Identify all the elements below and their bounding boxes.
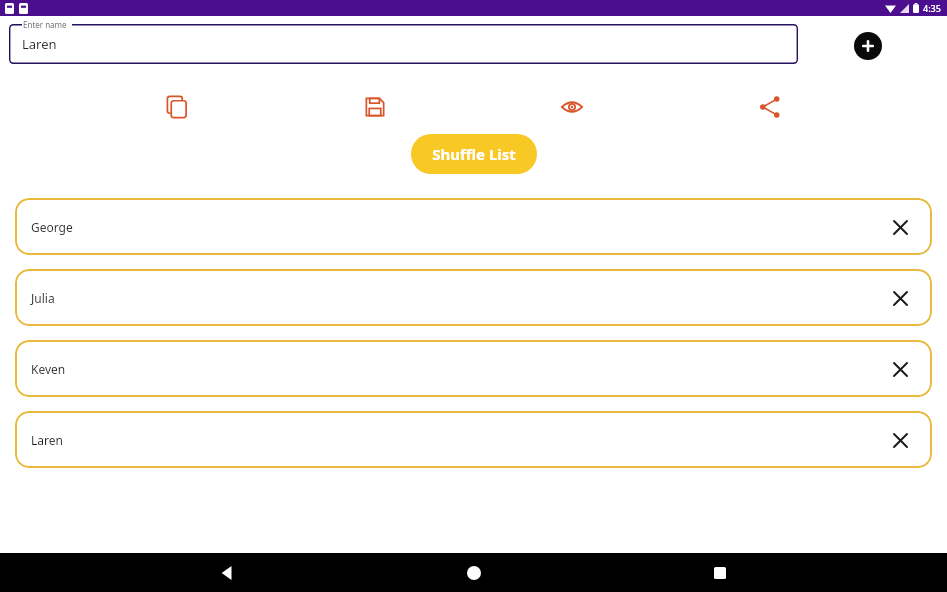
button[interactable]: Show list — [551, 86, 593, 128]
button[interactable]: Shuffle List — [411, 134, 537, 174]
staticText: George — [31, 219, 73, 235]
button[interactable]: Laren — [9, 24, 798, 64]
button[interactable]: Home — [454, 553, 494, 592]
button[interactable]: Back — [207, 553, 247, 592]
button[interactable]: George — [15, 198, 932, 255]
staticText: 4:35 — [923, 2, 941, 14]
staticText: Shuffle List — [432, 144, 516, 164]
staticText: Julia — [31, 290, 55, 306]
button[interactable]: Julia — [15, 269, 932, 326]
button[interactable]: Remove Julia — [886, 284, 914, 312]
button[interactable]: Copy list — [156, 86, 198, 128]
button[interactable]: Save list — [354, 86, 396, 128]
staticText: Laren — [31, 432, 63, 448]
button[interactable]: Remove Keven — [886, 355, 914, 383]
staticText: Keven — [31, 361, 66, 377]
button[interactable]: Laren — [15, 411, 932, 468]
button[interactable]: Keven — [15, 340, 932, 397]
button[interactable]: Remove George — [886, 213, 914, 241]
button[interactable]: Remove Laren — [886, 426, 914, 454]
button[interactable]: Add name — [854, 32, 882, 60]
staticText: Enter name — [23, 19, 67, 30]
staticText: Laren — [22, 35, 57, 53]
button[interactable]: Recent apps — [700, 553, 740, 592]
button[interactable]: Share list — [749, 86, 791, 128]
